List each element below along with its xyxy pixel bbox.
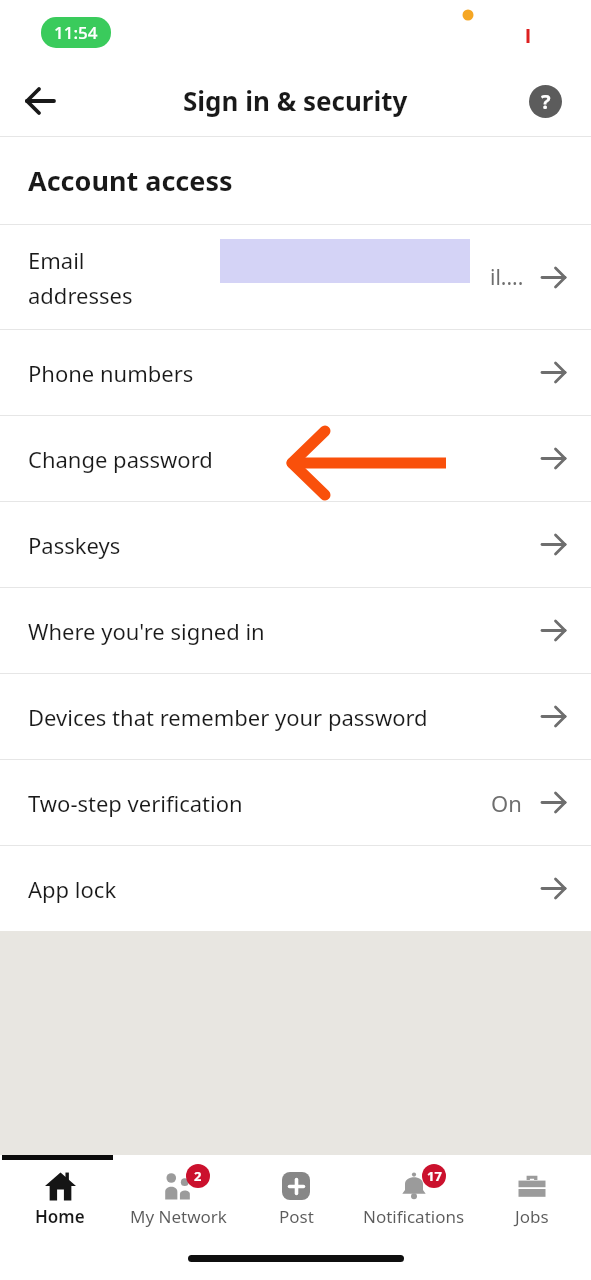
staticText: Email [28,245,85,275]
staticText: il.... [490,263,524,292]
button[interactable]: Post [237,1160,355,1236]
button[interactable]: Jobs [473,1160,591,1236]
button[interactable]: Email [0,224,591,329]
staticText: Post [279,1205,314,1228]
button[interactable]: 17 [355,1160,473,1236]
staticText: Account access [28,162,233,199]
button[interactable]: Devices that remember your password [0,673,591,759]
button[interactable]: App lock [0,845,591,931]
button[interactable]: Help [523,79,567,123]
staticText: App lock [28,874,117,904]
staticText: Jobs [515,1205,549,1228]
button[interactable]: Two-step verification [0,759,591,845]
staticText: Phone numbers [28,358,194,388]
staticText: Change password [28,444,213,474]
button[interactable]: Passkeys [0,501,591,587]
button[interactable]: Where you're signed in [0,587,591,673]
staticText: ? [541,88,551,115]
button[interactable]: 2 [119,1160,237,1236]
staticText: Devices that remember your password [28,702,428,732]
button[interactable]: Change password [0,415,591,501]
staticText: addresses [28,280,133,310]
staticText: Home [35,1205,85,1228]
staticText: 17 [427,1167,442,1185]
button[interactable]: Back [12,73,68,129]
staticText: 11:54 [54,21,98,44]
staticText: 2 [194,1167,202,1185]
staticText: Sign in & security [183,83,408,118]
staticText: My Network [130,1205,227,1228]
button[interactable]: Home [0,1160,119,1236]
staticText: Passkeys [28,530,121,560]
button[interactable]: Phone numbers [0,329,591,415]
staticText: Two-step verification [28,788,243,818]
staticText: Where you're signed in [28,616,265,646]
staticText: Notifications [363,1205,465,1228]
staticText: On [491,788,522,818]
